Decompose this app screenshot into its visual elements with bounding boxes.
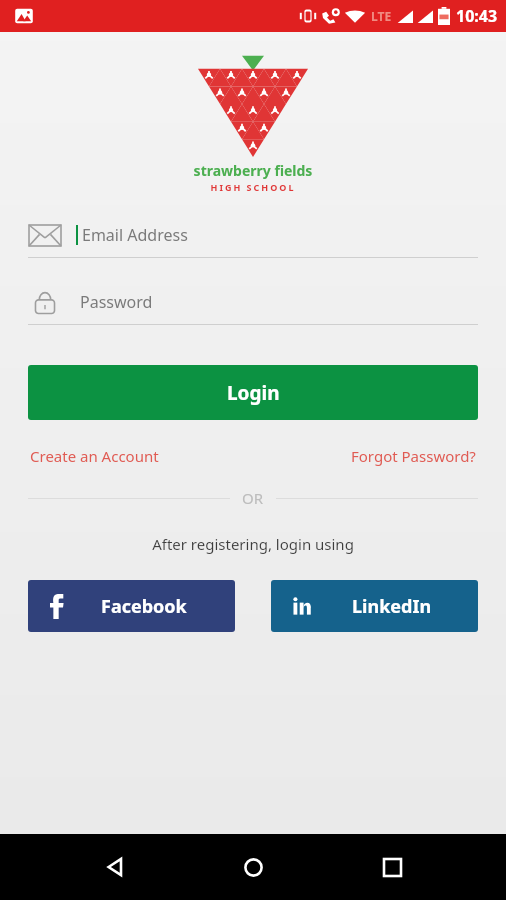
staticText: LinkedIn [352, 594, 432, 619]
button[interactable]: Forgot Password? [351, 440, 476, 472]
staticText: Facebook [101, 594, 187, 619]
staticText: 10:43 [456, 5, 498, 27]
staticText: strawberry fields [0, 161, 506, 180]
button[interactable]: Create an Account [30, 440, 159, 472]
staticText: LTE [371, 8, 392, 24]
staticText: Forgot Password? [351, 446, 476, 466]
button[interactable]: Facebook [28, 580, 235, 632]
button[interactable]: Back [91, 843, 139, 891]
button[interactable]: Recent apps [368, 843, 416, 891]
staticText: HIGH SCHOOL [0, 181, 506, 193]
staticText: Password [80, 291, 153, 313]
staticText: OR [242, 488, 264, 508]
staticText: After registering, login using [0, 534, 506, 554]
staticText: Email Address [82, 224, 188, 246]
button[interactable]: Login [28, 365, 478, 420]
staticText: Create an Account [30, 446, 159, 466]
button[interactable]: Home [229, 843, 277, 891]
staticText: Login [227, 380, 280, 406]
button[interactable]: LinkedIn [271, 580, 478, 632]
